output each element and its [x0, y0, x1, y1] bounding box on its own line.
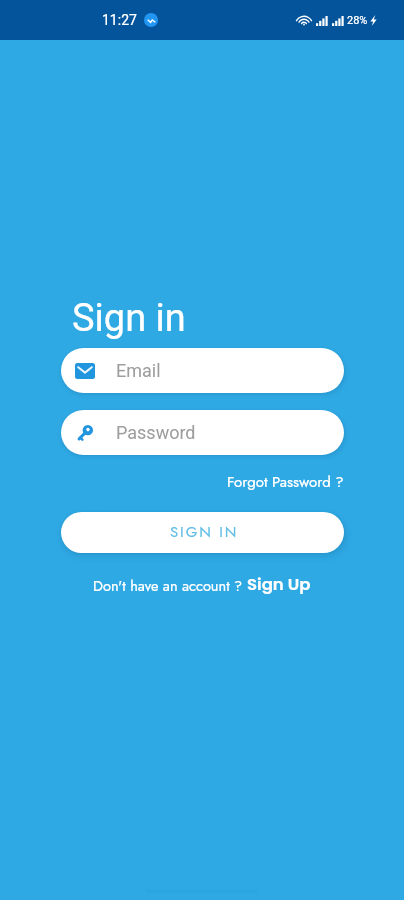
other: Email [75, 363, 95, 379]
staticText: Password [116, 422, 196, 443]
staticText: 28% [347, 14, 368, 27]
other: Mobile signal [332, 16, 344, 26]
other: Messenger notification [144, 13, 158, 27]
button[interactable]: Email [61, 348, 344, 393]
other: Charging [370, 15, 377, 26]
button[interactable]: Sign Up [247, 573, 311, 596]
other: Mobile signal [316, 16, 328, 26]
staticText: 11:27 [102, 12, 137, 28]
button[interactable]: Forgot Password ? [227, 471, 344, 493]
staticText: Don't have an account ? [93, 575, 247, 596]
button[interactable]: Password [61, 410, 344, 455]
staticText: Email [116, 360, 161, 381]
button[interactable]: SIGN IN [61, 512, 344, 553]
other: Wi-Fi [297, 15, 311, 26]
staticText: SIGN IN [170, 521, 239, 543]
staticText: Sign in [72, 296, 186, 341]
other: Password [75, 423, 95, 443]
